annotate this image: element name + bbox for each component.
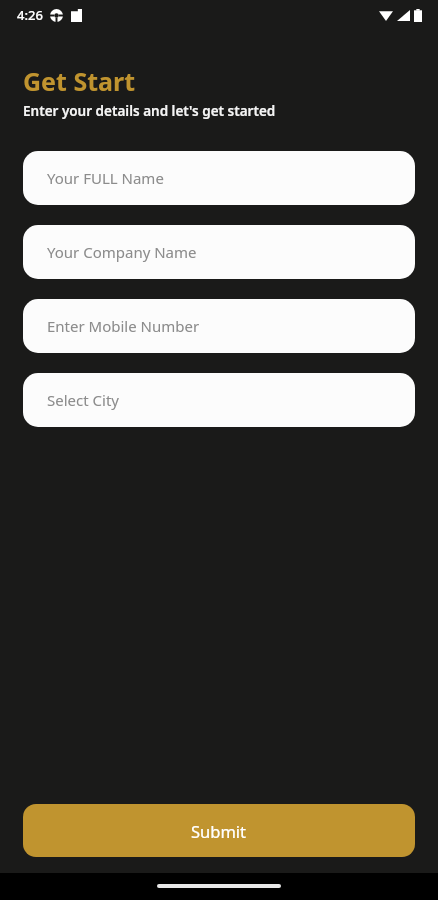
button[interactable]: Your FULL Name	[23, 151, 415, 205]
button[interactable]: Enter Mobile Number	[23, 299, 415, 353]
staticText: Your FULL Name	[47, 168, 164, 188]
staticText: 4:26	[17, 6, 43, 24]
button[interactable]: Your Company Name	[23, 225, 415, 279]
button[interactable]: Submit	[23, 804, 415, 857]
button[interactable]: Select City	[23, 373, 415, 427]
staticText: Get Start	[23, 64, 136, 98]
staticText: Enter Mobile Number	[47, 316, 200, 336]
staticText: Select City	[47, 390, 119, 410]
staticText: Submit	[191, 820, 247, 842]
staticText: Enter your details and let's get started	[23, 102, 276, 120]
staticText: Your Company Name	[47, 242, 197, 262]
